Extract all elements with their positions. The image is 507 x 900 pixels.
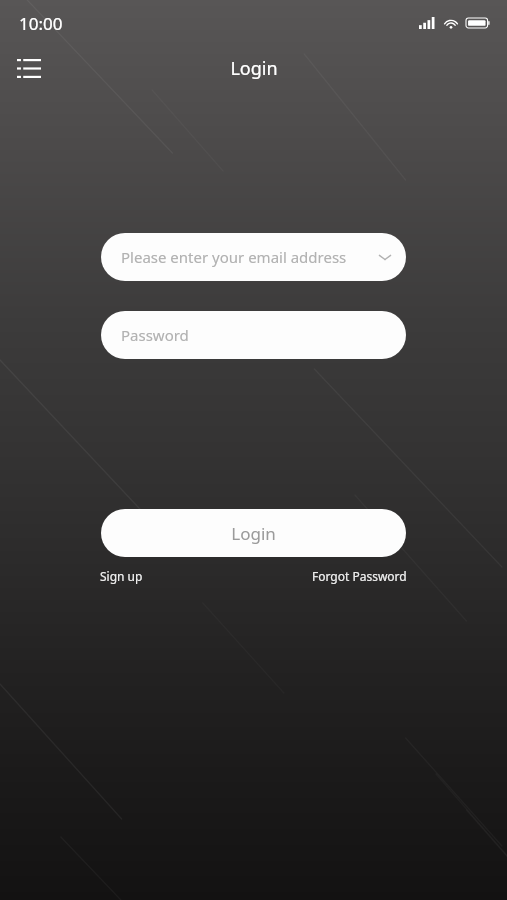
button[interactable]: Sign up: [100, 568, 143, 584]
staticText: 10:00: [19, 12, 63, 35]
staticText: Please enter your email address: [121, 247, 347, 267]
staticText: Login: [231, 522, 276, 545]
button[interactable]: Password: [101, 311, 406, 359]
button[interactable]: Menu: [10, 49, 48, 87]
button[interactable]: Login: [101, 509, 406, 557]
staticText: Password: [121, 325, 189, 345]
staticText: Forgot Password: [312, 568, 407, 584]
button[interactable]: Please enter your email address: [101, 233, 406, 281]
staticText: Sign up: [100, 568, 143, 584]
button[interactable]: Forgot Password: [312, 568, 407, 584]
staticText: Login: [230, 56, 278, 81]
